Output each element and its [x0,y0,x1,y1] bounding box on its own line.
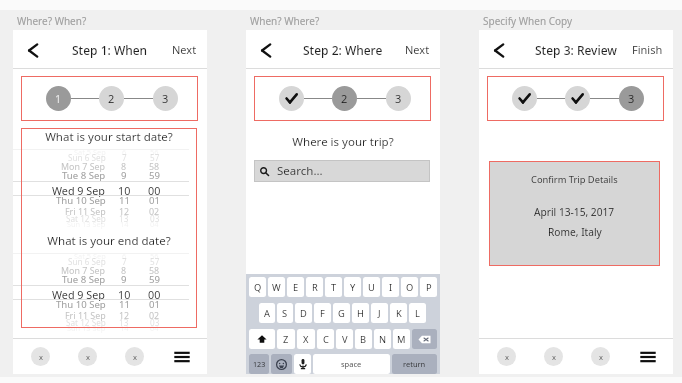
staticText: 2 [341,91,348,106]
staticText: 12 [119,205,130,217]
staticText: Step 2: Where [303,42,383,58]
staticText: 56 [150,147,159,157]
button[interactable]: F [314,303,331,323]
button[interactable]: Step 2 [332,86,357,111]
staticText: W [272,281,281,294]
staticText: A [264,307,270,320]
staticText: 6 [122,147,127,157]
button[interactable]: Tab [31,347,50,366]
button[interactable]: Step 2 [99,86,124,111]
staticText: Where is your trip? [246,134,440,150]
staticText: G [338,307,345,320]
staticText: Next [405,42,430,57]
staticText: T [331,281,337,294]
button[interactable]: L [409,303,426,323]
button[interactable]: Step 3 [619,86,644,111]
staticText: Specify When Copy [483,14,573,28]
staticText: 7 [122,152,127,163]
button[interactable]: J [371,303,388,323]
staticText: B [360,333,367,346]
button[interactable]: return [392,354,437,374]
button[interactable]: R [306,277,323,297]
button[interactable]: D [295,303,312,323]
staticText: X [303,333,309,346]
button[interactable]: Q [249,277,266,297]
staticText: 3 [395,91,402,106]
staticText: E [293,281,299,294]
button[interactable]: Search... [254,160,430,182]
button[interactable]: E [287,277,304,297]
button[interactable]: I [382,277,399,297]
staticText: 9 [121,273,127,286]
staticText: Sun 13 Sep [67,323,106,333]
button[interactable]: Z [277,329,295,349]
button[interactable]: U [363,277,380,297]
button[interactable]: N [374,329,391,349]
staticText: Thu 10 Sep [56,194,106,207]
button[interactable]: Back [21,38,45,62]
button[interactable]: Emoji [271,354,292,374]
staticText: 00 [148,287,161,301]
button[interactable]: V [336,329,353,349]
button[interactable]: P [420,277,437,297]
button[interactable]: Back [487,38,511,62]
staticText: Z [283,333,289,346]
button[interactable]: Menu [172,347,191,366]
staticText: 02 [149,205,160,217]
button[interactable]: Y [344,277,361,297]
staticText: Confirm Trip Details [531,173,618,186]
button[interactable]: Next [405,42,430,57]
staticText: 59 [149,169,160,182]
button[interactable]: X [297,329,315,349]
button[interactable]: Step 3 [153,86,178,111]
button[interactable]: Step 1 [46,86,71,111]
button[interactable]: Tab [78,347,97,366]
staticText: What is your start date? [21,129,197,145]
staticText: Y [350,281,356,294]
button[interactable]: B [355,329,372,349]
staticText: When? Where? [250,14,320,28]
staticText: 8 [121,264,127,276]
staticText: R [312,281,318,294]
button[interactable]: Shift [249,329,275,349]
button[interactable]: Step 1 [512,86,537,111]
button[interactable]: Tab [544,347,563,366]
button[interactable]: M [393,329,410,349]
button[interactable]: H [352,303,369,323]
button[interactable]: K [390,303,407,323]
button[interactable]: Back [254,38,278,62]
button[interactable]: C [317,329,334,349]
button[interactable]: space [313,354,390,374]
staticText: Sun 6 Sep [68,152,106,163]
staticText: Mon 7 Sep [61,160,106,172]
button[interactable]: W [268,277,285,297]
button[interactable]: A [259,303,275,323]
button[interactable]: Tab [497,347,516,366]
button[interactable]: Backspace [412,329,437,349]
staticText: Fri 11 Sep [65,309,106,321]
button[interactable]: Finish [632,42,663,57]
button[interactable]: S [277,303,293,323]
button[interactable]: O [401,277,418,297]
staticText: 11 [119,194,130,207]
button[interactable]: Step 1 [279,86,304,111]
staticText: Wed 9 Sep [52,287,106,301]
button[interactable]: Tab [591,347,610,366]
staticText: L [415,307,420,320]
button[interactable]: Tab [125,347,144,366]
button[interactable]: Step 3 [386,86,411,111]
button[interactable]: Next [172,42,197,57]
staticText: x [133,352,137,362]
button[interactable]: T [325,277,342,297]
staticText: H [357,307,364,320]
button[interactable]: Dictation [294,354,311,374]
button[interactable]: Step 2 [565,86,590,111]
button[interactable]: Menu [638,347,657,366]
staticText: 01 [149,194,160,207]
button[interactable]: 123 [249,354,269,374]
staticText: What is your end date? [21,233,197,249]
staticText: Sat 12 Sep [66,213,106,224]
staticText: 01 [149,298,160,311]
staticText: 10 [118,287,131,301]
button[interactable]: G [333,303,350,323]
